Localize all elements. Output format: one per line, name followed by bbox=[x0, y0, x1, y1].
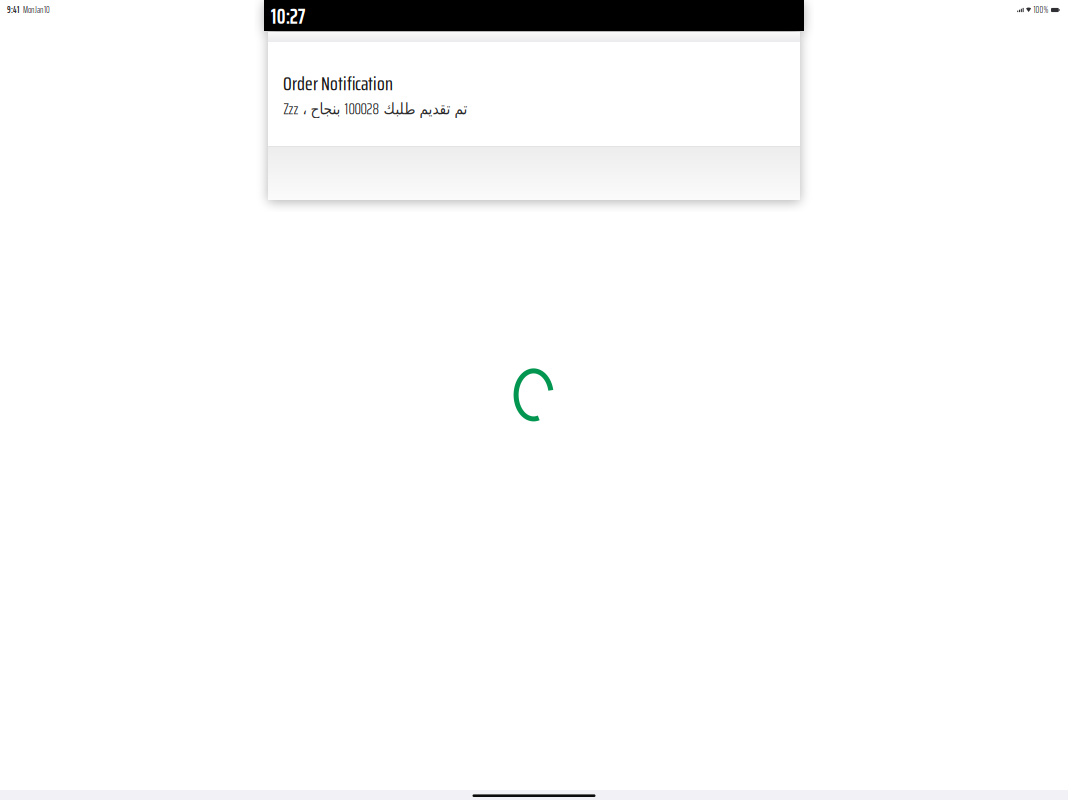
staticText: Order Notification bbox=[283, 67, 393, 99]
staticText: تم تقديم طلبك 100028 بنجاح ، Zzz bbox=[283, 97, 467, 121]
staticText: 10:27 bbox=[271, 0, 306, 33]
button[interactable]: 10:27 bbox=[264, 0, 314, 31]
staticText: 100% bbox=[1034, 3, 1049, 17]
staticText: Mon Jan 10 bbox=[23, 3, 50, 17]
staticText: 9:41 bbox=[7, 3, 19, 17]
